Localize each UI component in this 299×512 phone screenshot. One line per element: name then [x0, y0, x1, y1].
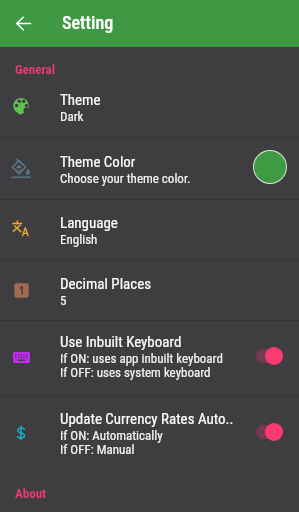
staticText: Use Inbuilt Keyboard — [60, 333, 182, 351]
staticText: Theme — [60, 91, 101, 109]
button[interactable]: Pick theme color — [254, 151, 286, 183]
staticText: Decimal Places — [60, 275, 152, 293]
staticText: Dark — [60, 109, 84, 124]
button[interactable]: Toggle setting — [256, 422, 284, 441]
button[interactable]: Theme — [0, 75, 299, 137]
staticText: Theme Color — [60, 153, 136, 171]
staticText: 5 — [60, 293, 67, 308]
staticText: English — [60, 232, 98, 247]
staticText: If ON: Automatically If OFF: Manual — [60, 428, 163, 457]
button[interactable]: Update Currency Rates Auto.. — [0, 397, 299, 471]
staticText: Update Currency Rates Auto.. — [60, 410, 234, 428]
button[interactable]: Decimal Places — [0, 260, 299, 320]
button[interactable]: Toggle setting — [256, 346, 284, 365]
button[interactable]: Back — [9, 9, 38, 38]
staticText: Language — [60, 214, 118, 232]
button[interactable]: Use Inbuilt Keyboard — [0, 321, 299, 396]
staticText: General — [15, 62, 55, 77]
staticText: Choose your theme color. — [60, 171, 191, 186]
staticText: About — [15, 486, 47, 501]
button[interactable]: Theme Color — [0, 138, 299, 199]
staticText: Setting — [62, 12, 114, 33]
button[interactable]: Language — [0, 200, 299, 259]
staticText: If ON: uses app inbuilt keyboard If OFF:… — [60, 351, 223, 380]
